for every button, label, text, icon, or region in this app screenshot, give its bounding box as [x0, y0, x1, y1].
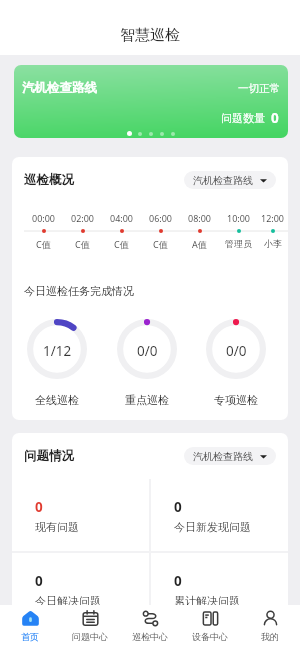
- button[interactable]: 汽机检查路线: [184, 171, 276, 189]
- button[interactable]: 巡检中心: [120, 605, 180, 649]
- button[interactable]: 汽机检查路线: [184, 447, 276, 465]
- staticText: 问题数量: [221, 111, 265, 125]
- staticText: 00:00: [32, 212, 56, 224]
- staticText: 0/0: [226, 342, 247, 360]
- staticText: 0: [174, 572, 182, 590]
- staticText: 汽机检查路线: [193, 174, 253, 187]
- staticText: 0/0: [137, 342, 158, 360]
- staticText: 1/12: [43, 342, 72, 360]
- staticText: 今日解决问题: [35, 594, 101, 608]
- staticText: C值: [114, 238, 129, 250]
- staticText: C值: [75, 238, 90, 250]
- staticText: C值: [36, 238, 51, 250]
- staticText: C值: [153, 238, 168, 250]
- staticText: A值: [192, 238, 207, 250]
- staticText: 06:00: [149, 212, 173, 224]
- staticText: 累计解决问题: [174, 594, 240, 608]
- staticText: 0: [271, 109, 279, 127]
- staticText: 专项巡检: [214, 393, 258, 407]
- staticText: 问题情况: [24, 448, 74, 464]
- staticText: 小李: [264, 238, 282, 249]
- button[interactable]: 首页: [0, 605, 60, 649]
- staticText: 今日新发现问题: [174, 520, 251, 534]
- button[interactable]: 汽机检查路线: [14, 65, 288, 138]
- staticText: 04:00: [110, 212, 134, 224]
- staticText: 0: [174, 498, 182, 516]
- staticText: 首页: [21, 631, 39, 642]
- staticText: 设备中心: [192, 631, 228, 642]
- staticText: 管理员: [225, 238, 252, 249]
- button[interactable]: 我的: [240, 605, 300, 649]
- staticText: 0: [35, 498, 43, 516]
- staticText: 汽机检查路线: [193, 450, 253, 463]
- staticText: 汽机检查路线: [22, 80, 97, 96]
- staticText: 全线巡检: [35, 393, 79, 407]
- button[interactable]: 0: [12, 479, 149, 548]
- staticText: 巡检概况: [24, 172, 74, 188]
- button[interactable]: 0: [151, 479, 288, 548]
- staticText: 智慧巡检: [120, 26, 180, 45]
- staticText: 0: [35, 572, 43, 590]
- button[interactable]: 0: [12, 553, 149, 622]
- staticText: 问题中心: [72, 631, 108, 642]
- staticText: 我的: [261, 631, 279, 642]
- button[interactable]: 问题中心: [60, 605, 120, 649]
- staticText: 02:00: [71, 212, 95, 224]
- staticText: 巡检中心: [132, 631, 168, 642]
- staticText: 现有问题: [35, 520, 79, 534]
- button[interactable]: 0: [151, 553, 288, 622]
- staticText: 今日巡检任务完成情况: [24, 284, 134, 298]
- staticText: 10:00: [227, 212, 251, 224]
- staticText: 重点巡检: [125, 393, 169, 407]
- staticText: 一切正常: [238, 82, 280, 95]
- staticText: 08:00: [188, 212, 212, 224]
- button[interactable]: 设备中心: [180, 605, 240, 649]
- staticText: 12:00: [261, 212, 285, 224]
